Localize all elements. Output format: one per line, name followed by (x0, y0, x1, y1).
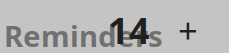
staticText: + (178, 7, 198, 53)
staticText: Reminders (4, 16, 163, 53)
staticText: 14 (108, 6, 150, 53)
